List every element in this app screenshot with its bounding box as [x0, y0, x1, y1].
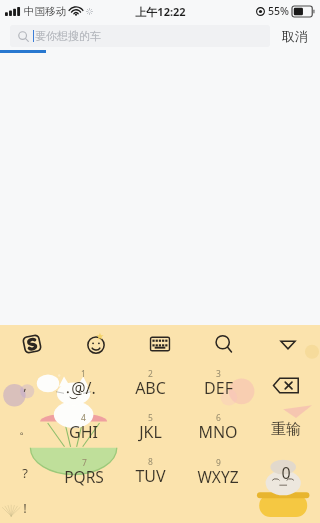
staticText: 中国移动	[24, 5, 66, 18]
staticText: 2	[148, 368, 153, 380]
button[interactable]: ?	[0, 451, 50, 495]
button[interactable]: Keyboard layout	[128, 325, 192, 363]
button[interactable]: Collapse keyboard	[256, 325, 320, 363]
button[interactable]: 5	[117, 407, 184, 451]
staticText: 5	[148, 412, 153, 424]
button[interactable]: 7	[50, 451, 117, 495]
button[interactable]: Backspace	[252, 363, 320, 407]
button[interactable]: Search	[192, 325, 256, 363]
staticText: 要你想搜的车	[35, 29, 101, 43]
staticText: PQRS	[64, 466, 104, 487]
staticText: 。	[19, 421, 32, 437]
button[interactable]	[252, 495, 320, 521]
staticText: ABC	[135, 377, 166, 399]
staticText: WXYZ	[197, 466, 239, 487]
staticText: 55%	[268, 4, 289, 18]
button[interactable]: 2	[117, 363, 184, 407]
button[interactable]: Sogou input	[0, 325, 64, 363]
button[interactable]: 6	[184, 407, 252, 451]
button[interactable]: 。	[0, 407, 50, 451]
staticText: MNO	[198, 421, 238, 443]
button[interactable]: 0	[252, 451, 320, 495]
staticText: 7	[82, 457, 87, 469]
staticText: 4	[81, 412, 86, 424]
staticText: 1	[81, 368, 86, 380]
staticText: 6	[216, 412, 221, 424]
staticText: GHI	[69, 421, 98, 443]
button[interactable]: 9	[184, 451, 252, 495]
staticText: TUV	[135, 465, 166, 487]
button[interactable]: 3	[184, 363, 252, 407]
staticText: 0	[281, 462, 291, 484]
button[interactable]: !	[0, 495, 50, 521]
staticText: 8	[148, 456, 153, 468]
staticText: 取消	[282, 28, 308, 44]
button[interactable]: 要你想搜的车	[10, 25, 270, 47]
staticText: ,	[23, 376, 27, 394]
button[interactable]: 8	[117, 451, 184, 495]
staticText: 上午12:22	[135, 4, 186, 19]
staticText: 9	[216, 457, 221, 469]
staticText: !	[23, 499, 27, 517]
staticText: DEF	[204, 377, 233, 399]
button[interactable]: ,	[0, 363, 50, 407]
staticText: JKL	[139, 421, 162, 443]
button[interactable]: 4	[50, 407, 117, 451]
staticText: ?	[22, 464, 28, 482]
staticText: 3	[216, 368, 221, 380]
button[interactable]: Emoji	[64, 325, 128, 363]
button[interactable]: 1	[50, 363, 117, 407]
staticText: 重输	[271, 420, 301, 439]
button[interactable]: 重输	[252, 407, 320, 451]
button[interactable]: 取消	[280, 24, 310, 48]
staticText: @/.	[71, 377, 96, 399]
